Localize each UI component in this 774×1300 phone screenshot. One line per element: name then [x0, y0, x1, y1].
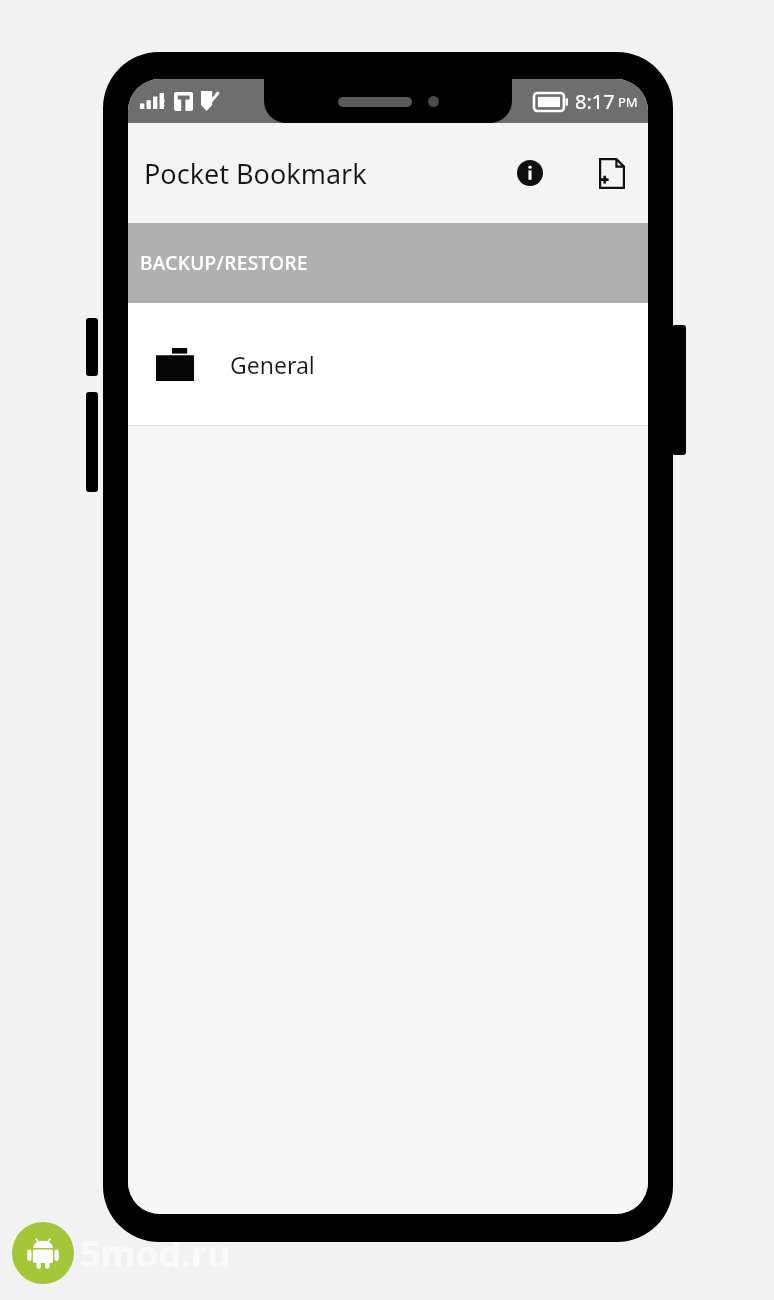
staticText: 2 — [160, 96, 166, 108]
button[interactable]: New bookmark — [584, 145, 640, 201]
staticText: 8:17 — [575, 88, 615, 115]
button[interactable]: General — [128, 303, 648, 426]
staticText: PM — [618, 93, 638, 111]
staticText: 5mod.ru — [80, 1229, 231, 1278]
staticText: BACKUP/RESTORE — [140, 250, 308, 276]
button[interactable]: About — [502, 145, 558, 201]
staticText: General — [230, 349, 315, 380]
staticText: Pocket Bookmark — [144, 155, 367, 192]
